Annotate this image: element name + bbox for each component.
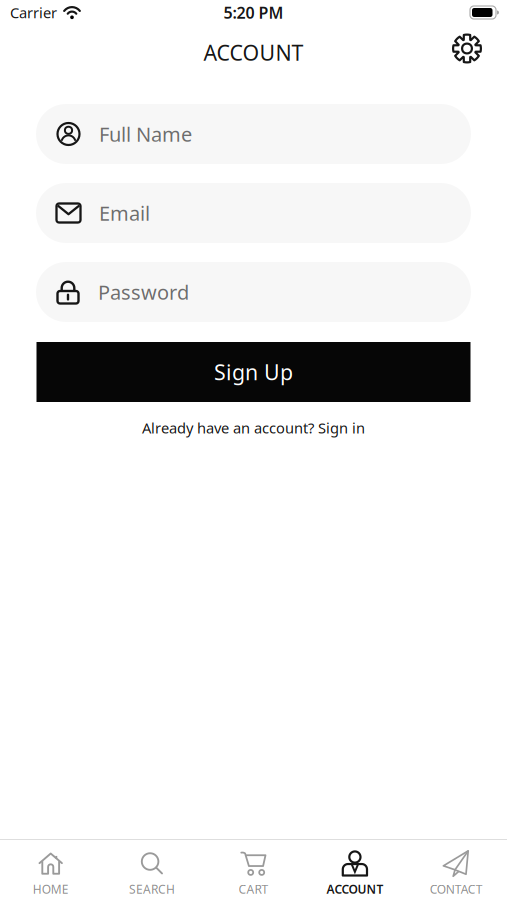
staticText: Already have an account? Sign in xyxy=(142,418,365,437)
staticText: SEARCH xyxy=(129,881,175,897)
button[interactable]: CART xyxy=(238,846,268,900)
button[interactable]: Already have an account? Sign in xyxy=(142,418,365,437)
staticText: Full Name xyxy=(99,121,192,147)
staticText: CART xyxy=(238,881,268,897)
staticText: ACCOUNT xyxy=(203,38,303,67)
staticText: Carrier xyxy=(10,3,57,22)
button[interactable]: Sign Up xyxy=(36,342,470,402)
button[interactable]: Password xyxy=(36,262,471,322)
button[interactable]: Full Name xyxy=(36,104,471,164)
button[interactable]: HOME xyxy=(33,846,69,900)
button[interactable]: ACCOUNT xyxy=(326,846,383,900)
staticText: Password xyxy=(98,279,189,305)
staticText: Sign Up xyxy=(214,358,293,386)
staticText: CONTACT xyxy=(430,881,483,897)
staticText: ACCOUNT xyxy=(326,881,383,897)
staticText: 5:20 PM xyxy=(223,2,283,23)
staticText: HOME xyxy=(33,881,69,897)
button[interactable]: Settings xyxy=(452,33,482,63)
button[interactable]: Email xyxy=(36,183,471,243)
staticText: Email xyxy=(99,200,150,226)
button[interactable]: SEARCH xyxy=(129,846,175,900)
button[interactable]: CONTACT xyxy=(430,846,483,900)
